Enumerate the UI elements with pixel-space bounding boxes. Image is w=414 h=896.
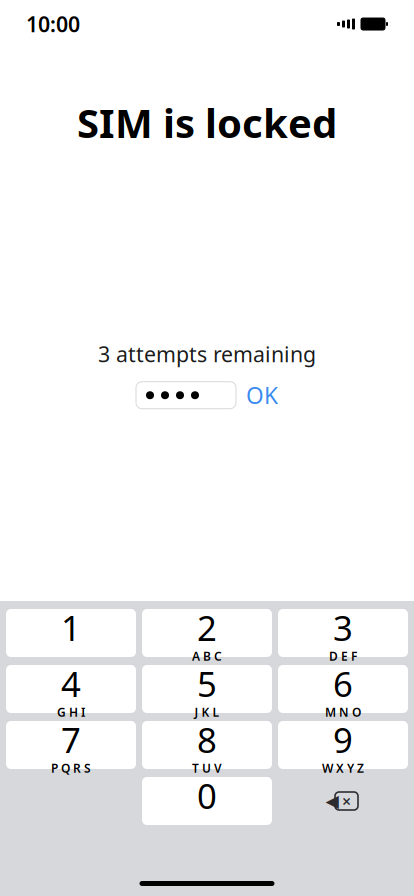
staticText: 5 (197, 660, 217, 706)
staticText: 7 (61, 716, 81, 762)
button[interactable]: Delete (278, 777, 408, 825)
staticText: 1 (61, 604, 81, 650)
button[interactable]: 8 (142, 721, 272, 769)
staticText: 3 (333, 604, 353, 650)
staticText: × (342, 790, 351, 812)
staticText: G H I (57, 704, 85, 720)
staticText: SIM is locked (77, 96, 337, 149)
staticText: D E F (329, 648, 357, 664)
staticText: 6 (333, 660, 353, 706)
staticText: P Q R S (51, 760, 91, 776)
staticText: W X Y Z (322, 760, 364, 776)
staticText: 9 (333, 716, 353, 762)
button[interactable]: 6 (278, 665, 408, 713)
button[interactable]: 3 (278, 609, 408, 657)
staticText: 2 (197, 604, 217, 650)
staticText: ◀ (325, 791, 338, 811)
button[interactable]: 0 (142, 777, 272, 825)
staticText: 10:00 (26, 10, 80, 38)
staticText: T U V (192, 760, 222, 776)
staticText: 4 (61, 660, 81, 706)
staticText: OK (246, 380, 278, 410)
button[interactable]: 7 (6, 721, 136, 769)
staticText: 0 (197, 772, 217, 818)
button[interactable]: 4 (6, 665, 136, 713)
button[interactable]: OK (246, 380, 278, 410)
button[interactable]: 9 (278, 721, 408, 769)
staticText: J K L (194, 704, 219, 720)
button[interactable]: 2 (142, 609, 272, 657)
button[interactable]: 5 (142, 665, 272, 713)
staticText: 3 attempts remaining (98, 340, 316, 368)
button[interactable]: 1 (6, 609, 136, 657)
staticText: M N O (325, 704, 361, 720)
staticText: 8 (197, 716, 217, 762)
staticText: A B C (192, 648, 222, 664)
